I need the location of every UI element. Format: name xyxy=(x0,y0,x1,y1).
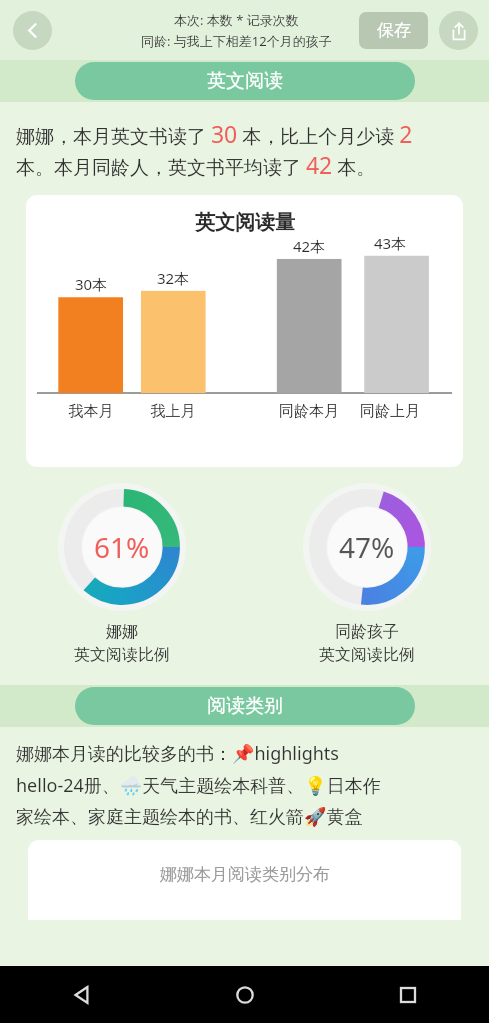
staticText: 英文阅读量 xyxy=(195,210,295,235)
staticText: 61% xyxy=(94,528,150,566)
staticText: 英文阅读比例 xyxy=(74,645,170,665)
staticText: 43本 xyxy=(357,233,423,253)
staticText: 同龄: 与我上下相差12个月的孩子 xyxy=(141,32,332,50)
staticText: 本次: 本数 * 记录次数 xyxy=(174,11,299,29)
staticText: 娜娜本月阅读类别分布 xyxy=(160,864,330,885)
button[interactable]: Share xyxy=(439,11,478,50)
staticText: 同龄孩子 xyxy=(335,622,399,642)
button[interactable]: Back xyxy=(61,974,103,1016)
button[interactable]: 阅读类别 xyxy=(75,687,415,725)
staticText: 娜娜 xyxy=(106,622,138,642)
staticText: 英文阅读比例 xyxy=(319,645,415,665)
staticText: 30本 xyxy=(51,274,131,294)
button[interactable]: 61% xyxy=(58,483,186,611)
staticText: 同龄上月 xyxy=(357,402,423,421)
button[interactable]: Home xyxy=(224,974,266,1016)
staticText: 娜娜本月读的比较多的书：📌highlights hello-24册、🌧天气主题绘… xyxy=(16,741,473,828)
button[interactable]: 47% xyxy=(303,483,431,611)
staticText: 娜娜，本月英文书读了 30 本，比上个月少读 2 本。本月同龄人，英文书平均读了… xyxy=(16,118,473,181)
staticText: 42本 xyxy=(269,236,349,256)
staticText: 英文阅读 xyxy=(207,69,283,93)
staticText: 47% xyxy=(339,528,395,566)
button[interactable]: 英文阅读 xyxy=(75,62,415,100)
staticText: 32本 xyxy=(133,268,213,288)
staticText: 我本月 xyxy=(51,402,131,421)
staticText: 我上月 xyxy=(133,402,213,421)
button[interactable]: 保存 xyxy=(359,12,428,49)
staticText: 阅读类别 xyxy=(207,694,283,718)
staticText: 保存 xyxy=(377,20,411,41)
staticText: 同龄本月 xyxy=(269,402,349,421)
button[interactable]: Recents xyxy=(387,974,429,1016)
button[interactable]: Back xyxy=(13,11,52,50)
